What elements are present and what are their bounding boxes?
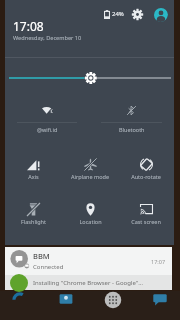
button[interactable]: Cast screen [118, 195, 174, 233]
button[interactable]: Location [62, 195, 118, 233]
staticText: Wednesday, December 10 [13, 34, 82, 42]
staticText: 17:07 [151, 258, 166, 265]
button[interactable]: Phone [12, 291, 28, 307]
button[interactable] [89, 98, 174, 122]
button[interactable]: Installing "Chrome Browser - Google"… [5, 275, 172, 290]
staticText: Airplane mode [71, 173, 109, 180]
button[interactable]: Axis [5, 150, 62, 188]
staticText: Axis [28, 173, 39, 180]
button[interactable]: Auto-rotate [118, 150, 174, 188]
button[interactable]: BBM [5, 247, 172, 275]
staticText: 17:08 [13, 18, 44, 34]
button[interactable]: All apps [104, 291, 122, 309]
staticText: @wifi.id [37, 126, 58, 133]
button[interactable] [5, 98, 89, 122]
button[interactable]: Contacts [58, 291, 74, 307]
staticText: Auto-rotate [131, 173, 161, 180]
staticText: Cast screen [131, 218, 161, 225]
button[interactable]: Flashlight [5, 195, 62, 233]
staticText: Location [79, 218, 102, 225]
staticText: Flashlight [21, 218, 46, 225]
button[interactable] [5, 66, 174, 90]
staticText: Bluetooth [119, 126, 145, 133]
button[interactable]: Settings [131, 8, 144, 21]
button[interactable]: User account [153, 7, 168, 22]
staticText: 24% [112, 10, 124, 18]
staticText: Installing "Chrome Browser - Google"… [33, 279, 143, 287]
button[interactable]: Airplane mode [62, 150, 118, 188]
staticText: Connected [33, 263, 64, 271]
staticText: BBM [33, 251, 50, 261]
button[interactable]: Messages [152, 291, 168, 307]
